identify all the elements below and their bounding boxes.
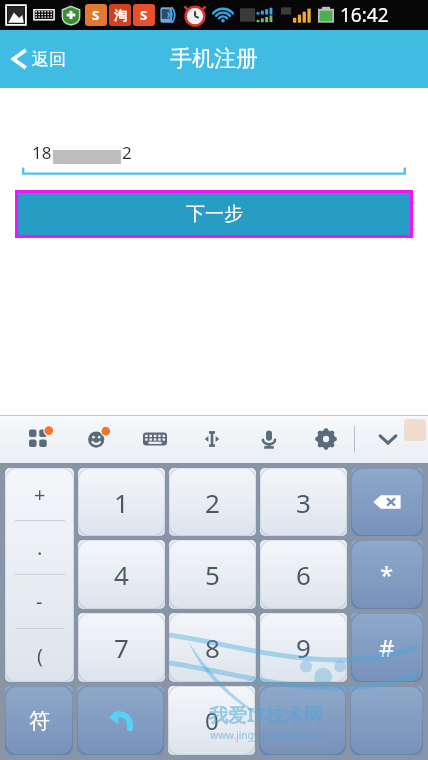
- button[interactable]: 0: [168, 686, 255, 755]
- staticText: 2: [205, 485, 220, 520]
- button[interactable]: 返回: [0, 30, 76, 88]
- button[interactable]: Backspace: [351, 468, 423, 536]
- button[interactable]: 4: [78, 540, 165, 609]
- staticText: 返回: [32, 49, 66, 70]
- button[interactable]: 1: [78, 468, 165, 536]
- button[interactable]: 2: [169, 468, 256, 536]
- staticText: 淘: [114, 7, 127, 23]
- button[interactable]: 5: [169, 540, 256, 609]
- button[interactable]: 下一步: [18, 193, 410, 235]
- staticText: 7: [114, 630, 129, 665]
- staticText: 18: [32, 141, 52, 164]
- staticText: 8: [205, 630, 220, 665]
- staticText: #: [379, 631, 395, 664]
- button[interactable]: 符: [5, 686, 73, 755]
- button[interactable]: 3: [260, 468, 347, 536]
- staticText: 16:42: [340, 2, 389, 28]
- button[interactable]: 7: [78, 613, 165, 682]
- button[interactable]: Keyboard: [126, 415, 183, 463]
- staticText: 1: [114, 485, 129, 520]
- staticText: .: [37, 534, 43, 561]
- staticText: 3: [296, 485, 311, 520]
- staticText: 符: [29, 708, 50, 734]
- staticText: (: [37, 642, 43, 669]
- button[interactable]: Settings: [297, 415, 354, 463]
- staticText: 9: [296, 630, 311, 665]
- staticText: S: [92, 6, 100, 24]
- staticText: *: [380, 558, 394, 591]
- staticText: 0: [205, 704, 219, 737]
- button[interactable]: Hide keyboard: [355, 415, 420, 463]
- staticText: +: [34, 481, 46, 508]
- button[interactable]: +: [5, 468, 74, 682]
- button[interactable]: Space: [259, 686, 346, 755]
- button[interactable]: 8: [169, 613, 256, 682]
- staticText: 5: [205, 557, 220, 592]
- button[interactable]: Voice input: [240, 415, 297, 463]
- button[interactable]: Emoji: [69, 415, 126, 463]
- staticText: 4: [114, 557, 129, 592]
- button[interactable]: 6: [260, 540, 347, 609]
- button[interactable]: Move cursor: [183, 415, 240, 463]
- staticText: www.jingyan.baidu.com: [210, 728, 323, 742]
- staticText: 下一步: [186, 202, 243, 226]
- staticText: S: [140, 6, 148, 24]
- button[interactable]: Enter: [350, 686, 423, 755]
- button[interactable]: Keyboard layouts: [12, 415, 69, 463]
- button[interactable]: 9: [260, 613, 347, 682]
- button[interactable]: *: [351, 540, 423, 609]
- button[interactable]: 18: [22, 140, 406, 170]
- staticText: 2: [122, 141, 132, 164]
- staticText: 我爱IT技术网: [209, 702, 323, 728]
- staticText: 6: [296, 557, 311, 592]
- staticText: 手机注册: [170, 45, 258, 73]
- button[interactable]: Return: [77, 686, 164, 755]
- staticText: -: [36, 588, 43, 615]
- button[interactable]: #: [351, 613, 423, 682]
